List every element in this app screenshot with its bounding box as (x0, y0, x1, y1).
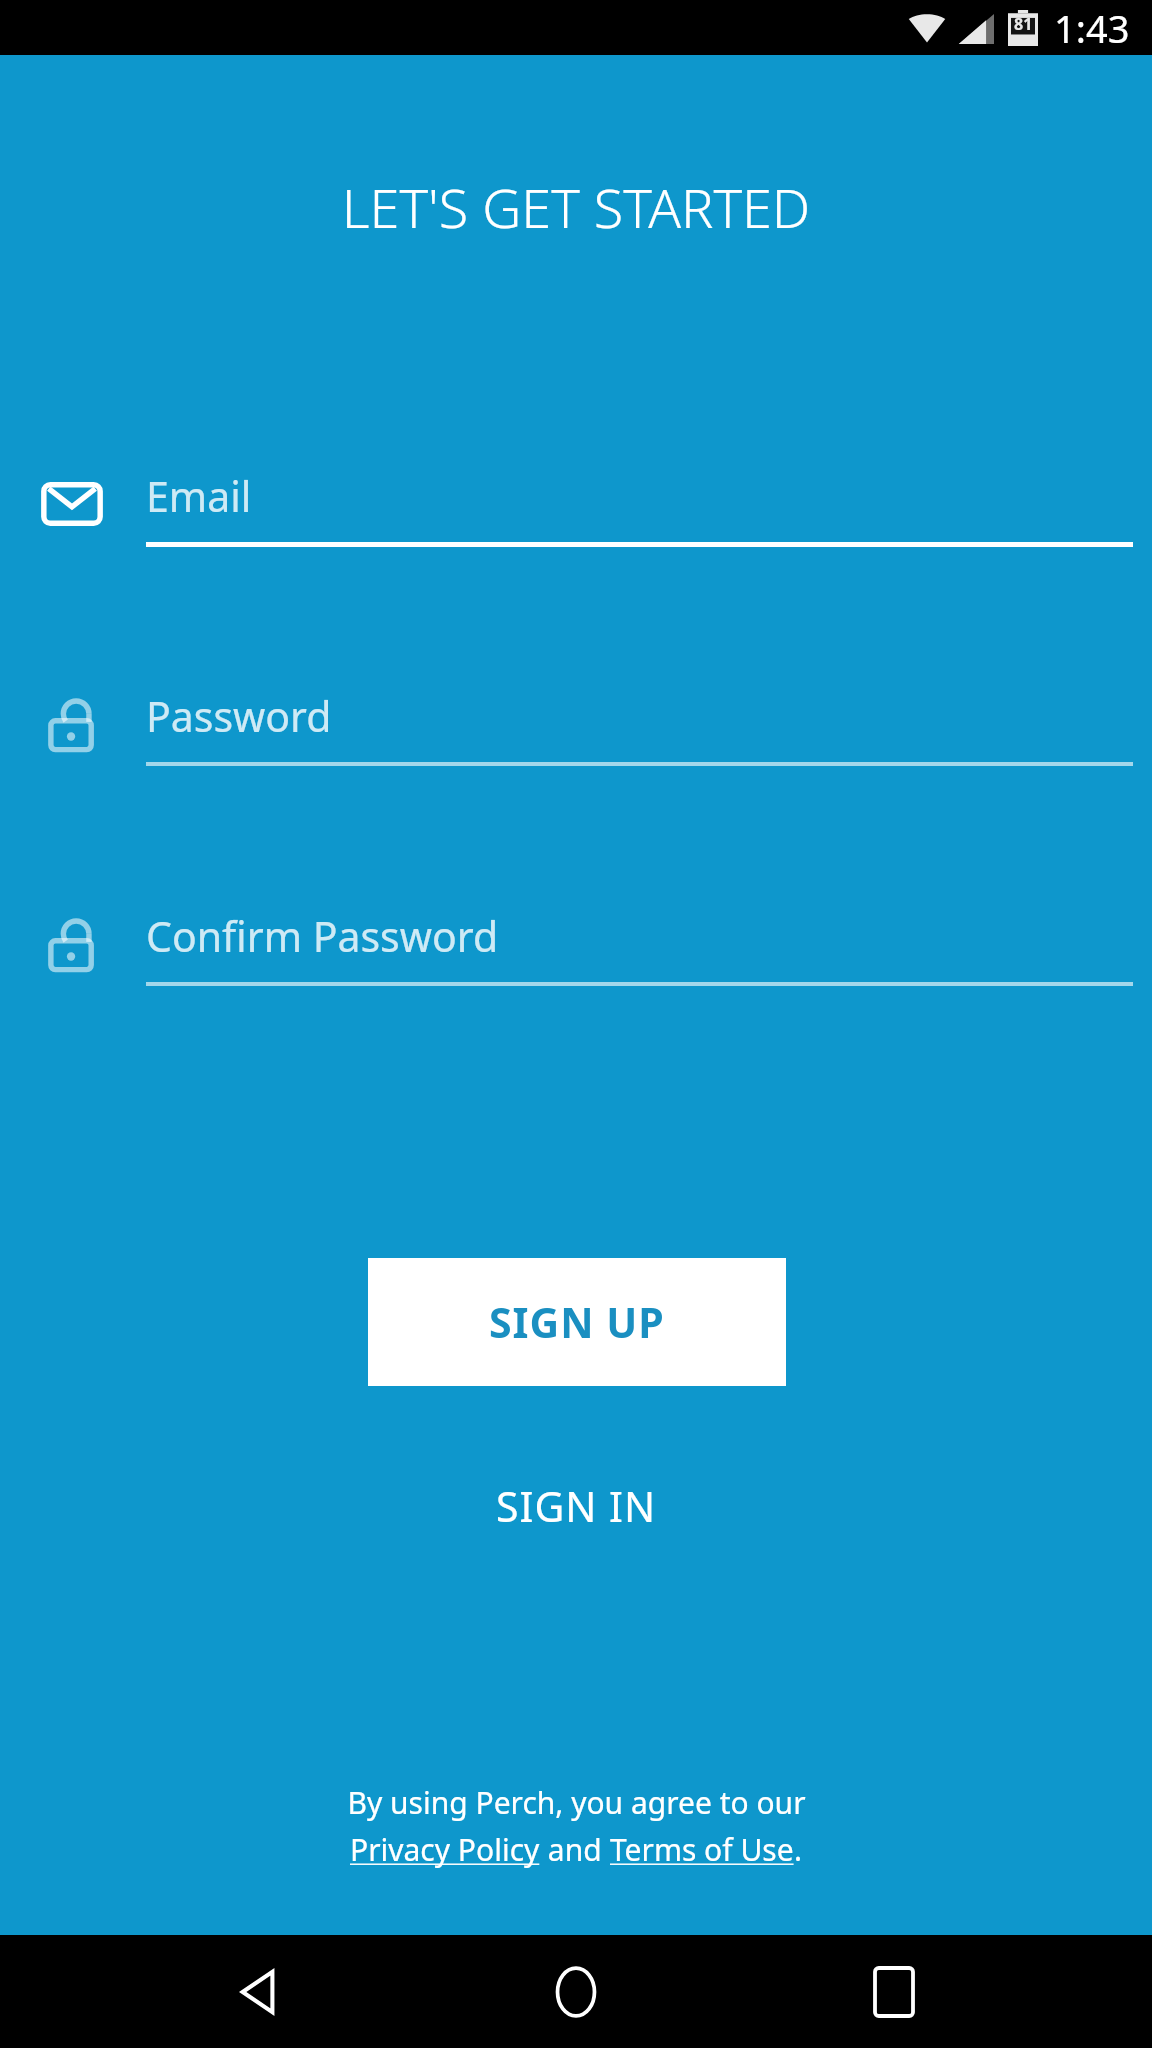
button[interactable]: SIGN IN (0, 1451, 1152, 1561)
staticText: . (794, 1829, 803, 1870)
button[interactable]: Home (516, 1935, 636, 2048)
button[interactable]: Email (0, 440, 1152, 580)
other: Email (40, 472, 104, 536)
staticText: LET'S GET STARTED (0, 170, 1152, 244)
button[interactable]: Password (0, 880, 1152, 1020)
staticText: Privacy Policy (350, 1829, 540, 1870)
staticText: Terms of Use (610, 1829, 794, 1870)
button[interactable]: Password (0, 660, 1152, 800)
button[interactable]: Privacy Policy (350, 1829, 540, 1870)
staticText: Password (146, 688, 332, 744)
button[interactable]: Terms of Use (610, 1829, 794, 1870)
other: Password (40, 912, 104, 976)
other: Password (40, 692, 104, 756)
staticText: and (540, 1829, 610, 1870)
button[interactable]: Back (198, 1935, 318, 2048)
staticText: SIGN UP (489, 1294, 665, 1350)
staticText: 81 (1014, 13, 1033, 35)
button[interactable]: SIGN UP (368, 1258, 786, 1386)
staticText: Confirm Password (146, 908, 499, 964)
staticText: Email (146, 468, 252, 524)
staticText: 1:43 (1054, 2, 1130, 54)
button[interactable]: Recent apps (834, 1935, 954, 2048)
staticText: By using Perch, you agree to our (347, 1782, 806, 1823)
staticText: SIGN IN (496, 1478, 657, 1534)
